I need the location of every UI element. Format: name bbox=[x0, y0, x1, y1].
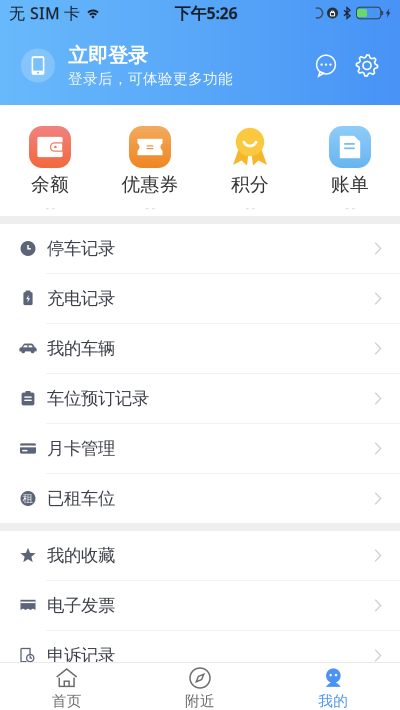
staticText: 充电记录 bbox=[47, 288, 115, 309]
staticText: 附近 bbox=[185, 692, 215, 710]
button[interactable]: 充电记录 bbox=[0, 274, 400, 323]
staticText: 立即登录 bbox=[68, 43, 148, 68]
button[interactable]: 停车记录 bbox=[0, 224, 400, 273]
button[interactable]: 立即登录 bbox=[21, 43, 233, 88]
staticText: 账单 bbox=[331, 173, 369, 196]
staticText: 首页 bbox=[52, 692, 82, 710]
button[interactable]: 我的 bbox=[267, 663, 400, 710]
staticText: 下午5:26 bbox=[174, 2, 237, 24]
button[interactable]: Settings bbox=[342, 49, 383, 81]
button[interactable]: 月卡管理 bbox=[0, 424, 400, 473]
button[interactable]: 积分 bbox=[200, 105, 300, 216]
button[interactable]: Messages bbox=[310, 49, 342, 81]
staticText: 月卡管理 bbox=[47, 438, 115, 459]
staticText: - - bbox=[245, 200, 254, 214]
button[interactable]: 我的收藏 bbox=[0, 531, 400, 580]
staticText: 余额 bbox=[31, 173, 69, 196]
button[interactable]: 租 bbox=[0, 474, 400, 523]
button[interactable]: 车位预订记录 bbox=[0, 374, 400, 423]
staticText: 停车记录 bbox=[47, 238, 115, 259]
staticText: - - bbox=[145, 200, 154, 214]
button[interactable]: 申诉记录 bbox=[0, 631, 400, 680]
staticText: 车位预订记录 bbox=[47, 388, 149, 409]
staticText: 我的车辆 bbox=[47, 338, 115, 359]
staticText: 申诉记录 bbox=[47, 645, 115, 666]
staticText: - - bbox=[345, 200, 354, 214]
staticText: 积分 bbox=[231, 173, 269, 196]
button[interactable]: 电子发票 bbox=[0, 581, 400, 630]
button[interactable]: 首页 bbox=[0, 663, 133, 710]
button[interactable]: 优惠券 bbox=[100, 105, 200, 216]
button[interactable]: 余额 bbox=[0, 105, 100, 216]
staticText: 电子发票 bbox=[47, 595, 115, 616]
staticText: 优惠券 bbox=[121, 173, 178, 196]
staticText: 登录后，可体验更多功能 bbox=[68, 70, 233, 88]
button[interactable]: 账单 bbox=[300, 105, 400, 216]
button[interactable]: 我的车辆 bbox=[0, 324, 400, 373]
staticText: 我的收藏 bbox=[47, 545, 115, 566]
staticText: 已租车位 bbox=[47, 488, 115, 509]
staticText: - - bbox=[45, 200, 54, 214]
button[interactable]: 附近 bbox=[133, 663, 267, 710]
staticText: 租 bbox=[22, 492, 33, 505]
staticText: 我的 bbox=[318, 692, 348, 710]
staticText: 无 SIM 卡 bbox=[9, 2, 80, 24]
